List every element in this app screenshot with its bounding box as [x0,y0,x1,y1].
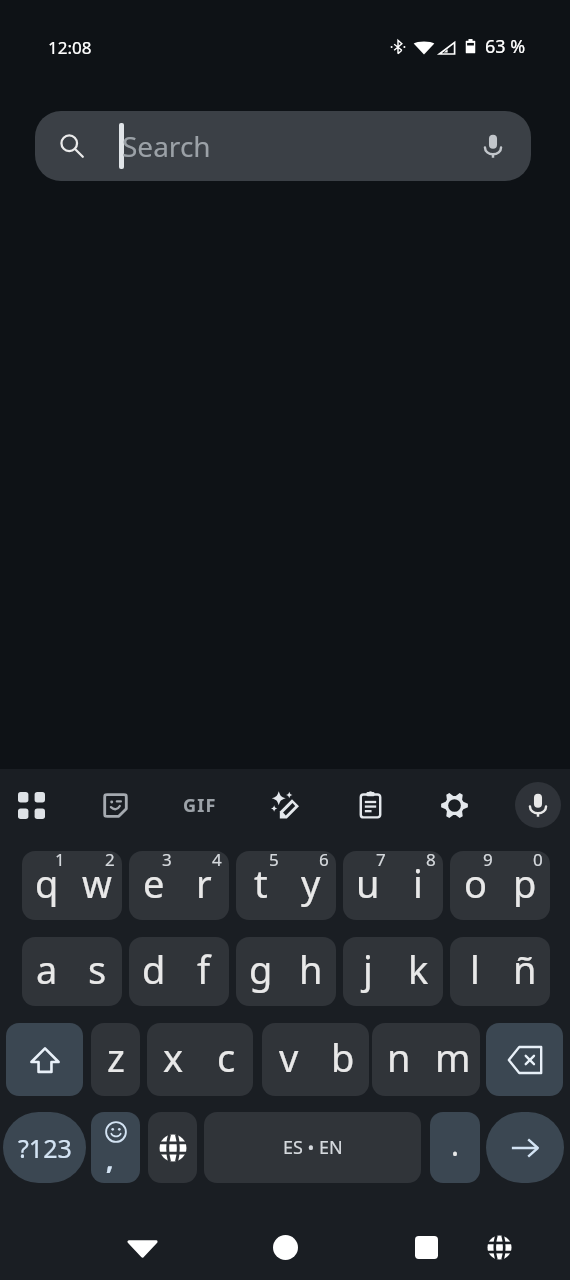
button[interactable]: c [200,1023,253,1096]
staticText: 1 [55,851,65,871]
staticText: r [196,857,212,909]
staticText: 12:08 [48,36,92,59]
staticText: i [413,857,423,909]
staticText: j [363,943,373,995]
staticText: k [408,943,429,995]
other: Voice search [480,133,506,159]
staticText: ES • EN [283,1135,343,1160]
button[interactable]: Switch keyboard [473,1221,525,1273]
button[interactable]: i [393,851,443,920]
staticText: 63 % [485,34,526,59]
staticText: a [36,943,58,995]
button[interactable]: v [262,1023,316,1096]
button[interactable]: x [147,1023,200,1096]
button[interactable]: a [22,937,72,1006]
staticText: 3 [162,851,172,871]
button[interactable]: GIF [176,781,224,829]
staticText: ñ [513,943,537,995]
staticText: x [163,1031,184,1083]
button[interactable]: ES • EN [204,1112,421,1183]
button[interactable]: Enter [486,1112,564,1183]
staticText: 5 [269,851,279,871]
staticText: 8 [426,851,436,871]
button[interactable]: u [343,851,393,920]
button[interactable]: l [450,937,500,1006]
button[interactable]: q [22,851,72,920]
button[interactable]: Stickers [91,781,139,829]
button[interactable]: w [72,851,122,920]
staticText: f [197,943,211,995]
button[interactable]: k [393,937,443,1006]
button[interactable]: ?123 [3,1112,86,1183]
button[interactable]: h [286,937,336,1006]
button[interactable]: r [179,851,229,920]
button[interactable]: Edit [261,781,309,829]
staticText: q [35,857,59,909]
staticText: b [331,1031,355,1083]
staticText: y [301,857,321,909]
staticText: e [143,857,165,909]
staticText: 7 [376,851,386,871]
button[interactable]: Change language [148,1112,197,1183]
button[interactable]: p [500,851,550,920]
staticText: 0 [533,851,543,871]
button[interactable]: e [129,851,179,920]
staticText: z [107,1031,125,1083]
button[interactable]: Voice input [515,782,561,828]
button[interactable]: n [372,1023,426,1096]
button[interactable]: o [450,851,500,920]
button[interactable]: Apps [7,781,55,829]
button[interactable]: Back [116,1221,168,1273]
staticText: 9 [483,851,493,871]
staticText: v [279,1031,299,1083]
button[interactable]: d [129,937,179,1006]
button[interactable]: ñ [500,937,550,1006]
staticText: g [249,943,273,995]
staticText: 6 [319,851,329,871]
staticText: w [82,857,112,909]
button[interactable]: g [236,937,286,1006]
button[interactable]: Search [35,111,531,181]
button[interactable]: t [236,851,286,920]
button[interactable]: b [316,1023,369,1096]
staticText: n [387,1031,411,1083]
staticText: d [142,943,166,995]
staticText: 2 [105,851,115,871]
staticText: u [356,857,380,909]
staticText: t [254,857,268,909]
button[interactable]: Shift [6,1023,83,1096]
button[interactable]: z [91,1023,140,1096]
button[interactable]: Recents [400,1221,452,1273]
button[interactable]: Clipboard [346,781,394,829]
staticText: GIF [183,793,217,818]
staticText: c [217,1031,236,1083]
staticText: l [470,943,480,995]
button[interactable]: Settings [430,781,478,829]
button[interactable]: Backspace [486,1023,563,1096]
button[interactable]: Emoji [91,1112,140,1183]
button[interactable]: j [343,937,393,1006]
button[interactable]: s [72,937,122,1006]
staticText: , [106,1142,114,1177]
staticText: s [88,943,107,995]
staticText: p [513,857,537,909]
staticText: h [299,943,323,995]
button[interactable]: m [426,1023,480,1096]
staticText: o [464,857,487,909]
staticText: . [451,1124,460,1165]
staticText: Search [122,127,211,165]
button[interactable]: f [179,937,229,1006]
button[interactable]: y [286,851,336,920]
staticText: m [435,1031,471,1083]
staticText: 4 [212,851,222,871]
button[interactable]: . [430,1112,480,1183]
button[interactable]: Home [259,1221,311,1273]
staticText: ?123 [18,1131,72,1165]
